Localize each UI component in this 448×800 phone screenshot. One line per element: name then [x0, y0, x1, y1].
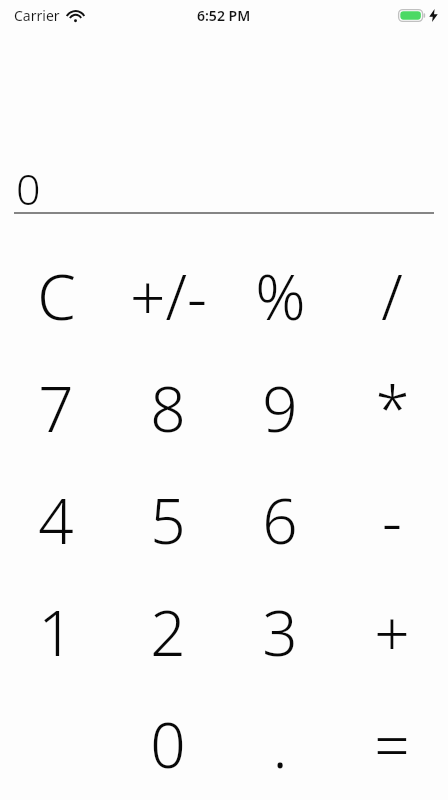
button[interactable]: +/-: [112, 240, 224, 352]
staticText: 1: [38, 590, 74, 674]
other: Charging: [429, 9, 438, 22]
staticText: +/-: [130, 254, 207, 338]
button[interactable]: 6: [224, 464, 336, 576]
button[interactable]: 3: [224, 576, 336, 688]
staticText: -: [382, 478, 402, 562]
staticText: 9: [262, 366, 298, 450]
button[interactable]: -: [336, 464, 448, 576]
staticText: /: [381, 254, 403, 338]
staticText: Carrier: [14, 6, 60, 25]
staticText: .: [272, 702, 288, 786]
button[interactable]: C: [0, 240, 112, 352]
button[interactable]: *: [336, 352, 448, 464]
staticText: 0: [16, 159, 41, 218]
button[interactable]: =: [336, 688, 448, 800]
button[interactable]: 0: [112, 688, 224, 800]
staticText: 2: [150, 590, 186, 674]
button[interactable]: 5: [112, 464, 224, 576]
button[interactable]: 8: [112, 352, 224, 464]
button[interactable]: +: [336, 576, 448, 688]
button[interactable]: .: [224, 688, 336, 800]
other: Wi-Fi signal: [67, 10, 84, 22]
staticText: C: [37, 254, 76, 338]
button[interactable]: 1: [0, 576, 112, 688]
staticText: 4: [38, 478, 74, 562]
button[interactable]: %: [224, 240, 336, 352]
staticText: *: [375, 366, 410, 450]
staticText: +: [374, 590, 410, 674]
button[interactable]: /: [336, 240, 448, 352]
staticText: 5: [150, 478, 186, 562]
staticText: 6:52 PM: [197, 6, 251, 25]
staticText: %: [255, 254, 306, 338]
staticText: 3: [262, 590, 298, 674]
button[interactable]: 2: [112, 576, 224, 688]
staticText: =: [374, 702, 410, 786]
staticText: 0: [150, 702, 186, 786]
staticText: 6: [262, 478, 298, 562]
staticText: 7: [38, 366, 74, 450]
button[interactable]: 9: [224, 352, 336, 464]
staticText: 8: [150, 366, 186, 450]
button[interactable]: 4: [0, 464, 112, 576]
button[interactable]: 7: [0, 352, 112, 464]
other: Battery full: [398, 9, 426, 22]
